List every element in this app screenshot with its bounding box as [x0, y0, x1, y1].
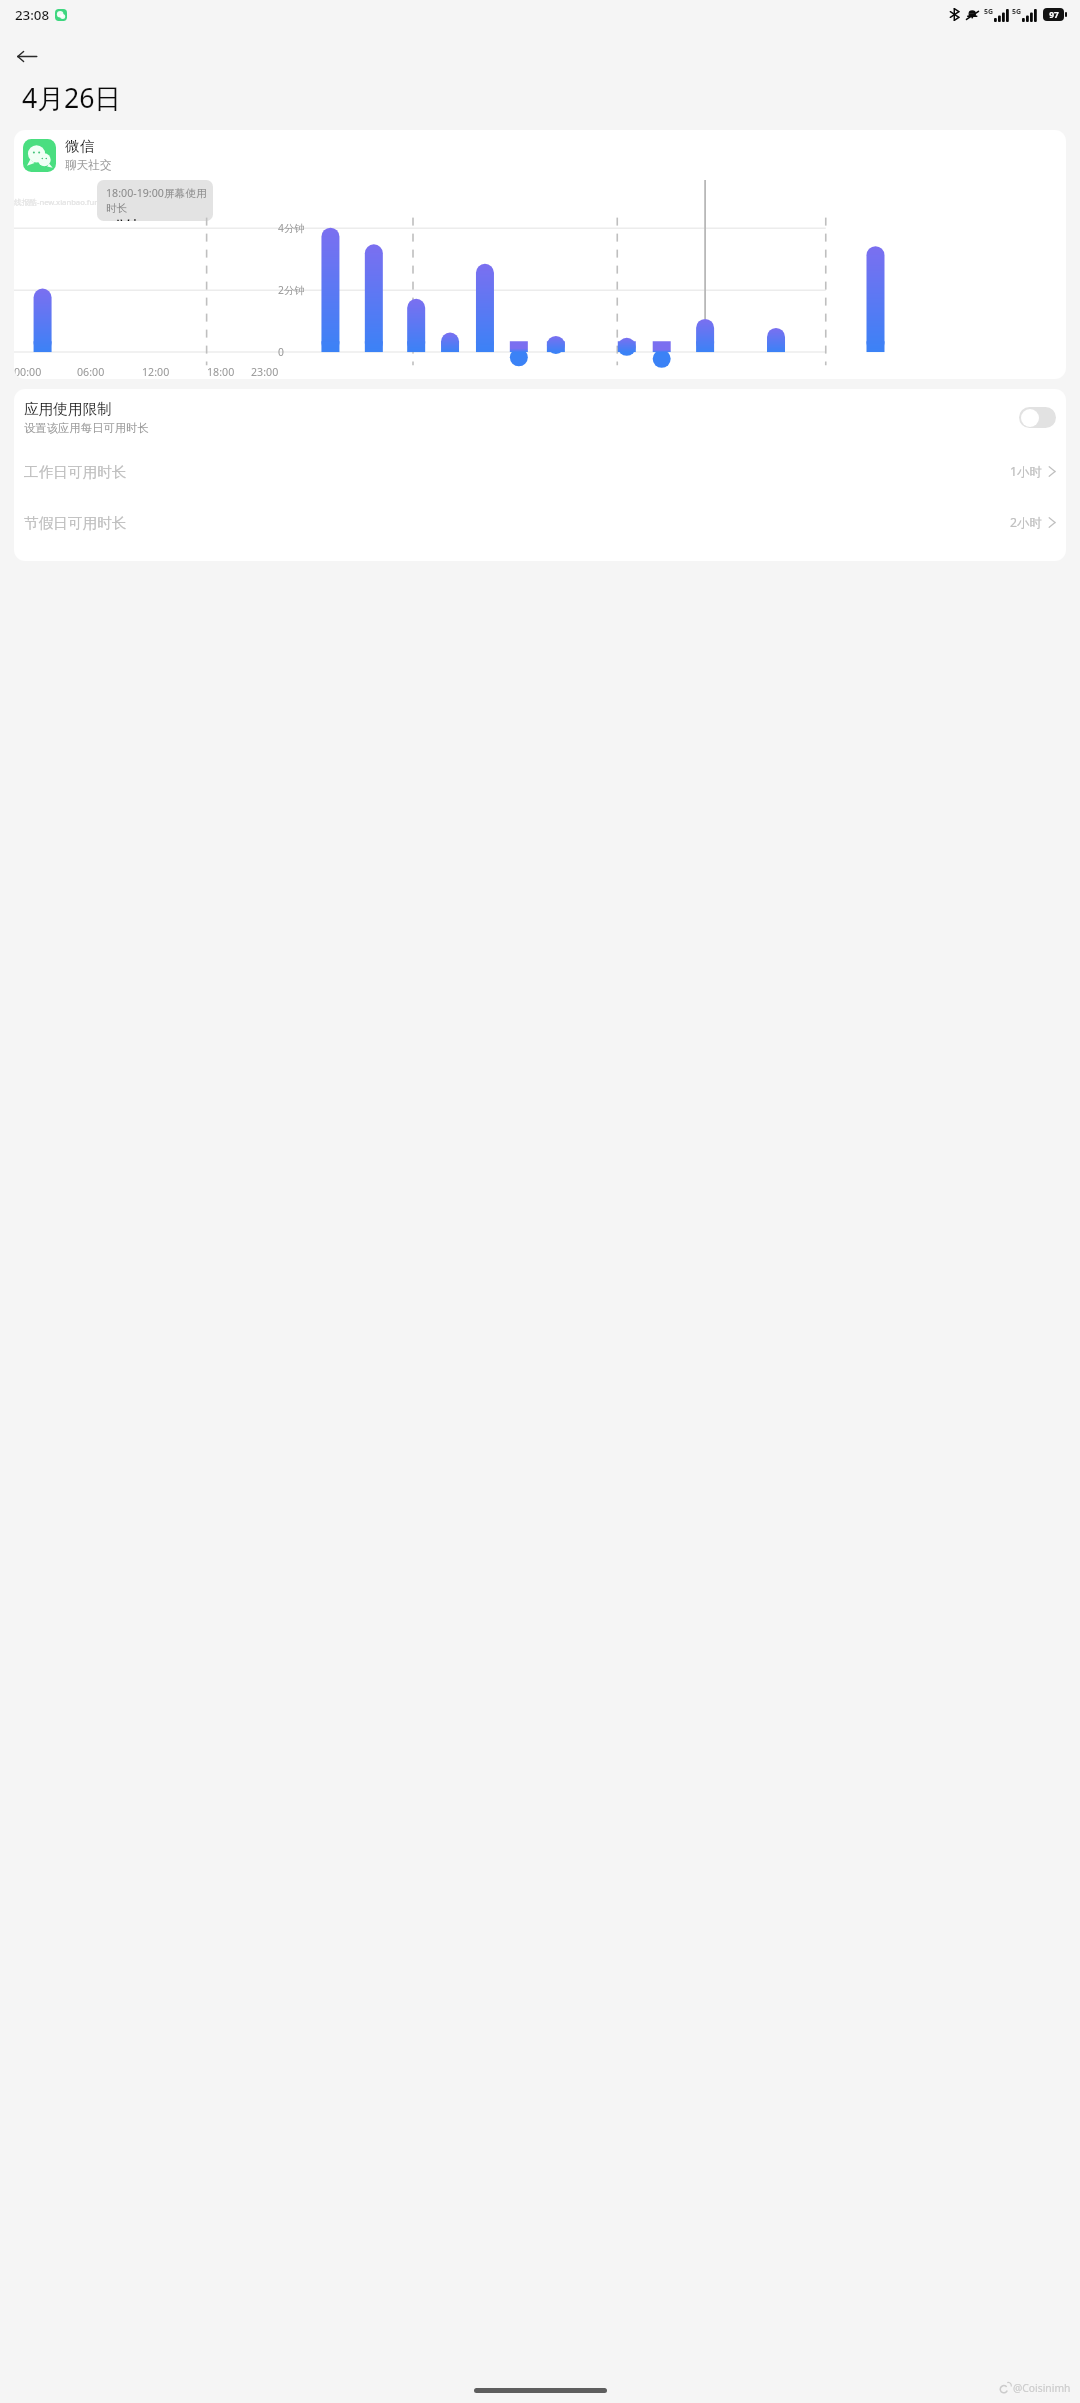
staticText: 2小时: [1010, 514, 1042, 531]
staticText: 00:00: [14, 365, 42, 379]
staticText: 1分钟: [106, 216, 139, 221]
button[interactable]: 18:00-19:00屏幕使用时长: [97, 180, 213, 221]
button[interactable]: 应用使用限制开关: [1019, 407, 1056, 428]
staticText: 5G: [1012, 7, 1022, 17]
staticText: 线报酷-new.xianbao.fun: [14, 197, 99, 207]
staticText: 应用使用限制: [24, 400, 112, 418]
staticText: 0: [278, 345, 284, 359]
staticText: 工作日可用时长: [24, 463, 127, 481]
staticText: 23:08: [15, 6, 50, 24]
staticText: 06:00: [77, 365, 105, 379]
staticText: 节假日可用时长: [24, 514, 127, 532]
staticText: 4分钟: [278, 221, 305, 235]
button[interactable]: Back: [11, 40, 43, 72]
staticText: 设置该应用每日可用时长: [24, 421, 149, 435]
staticText: 23:00: [251, 365, 279, 379]
button[interactable]: 应用使用限制: [14, 389, 1066, 446]
staticText: 1小时: [1010, 463, 1042, 480]
button[interactable]: 工作日可用时长: [14, 446, 1066, 497]
staticText: 5G: [984, 7, 994, 17]
button[interactable]: 微信: [14, 130, 1066, 180]
staticText: 2分钟: [278, 283, 305, 297]
staticText: 聊天社交: [65, 158, 112, 173]
staticText: 12:00: [142, 365, 170, 379]
button[interactable]: 节假日可用时长: [14, 497, 1066, 548]
staticText: 18:00-19:00屏幕使用时长: [106, 186, 213, 215]
staticText: 18:00: [207, 365, 235, 379]
staticText: 微信: [65, 137, 95, 155]
staticText: 97: [1049, 9, 1059, 20]
staticText: 4月26日: [22, 79, 122, 115]
staticText: @Coisinimh: [1013, 2381, 1071, 2395]
